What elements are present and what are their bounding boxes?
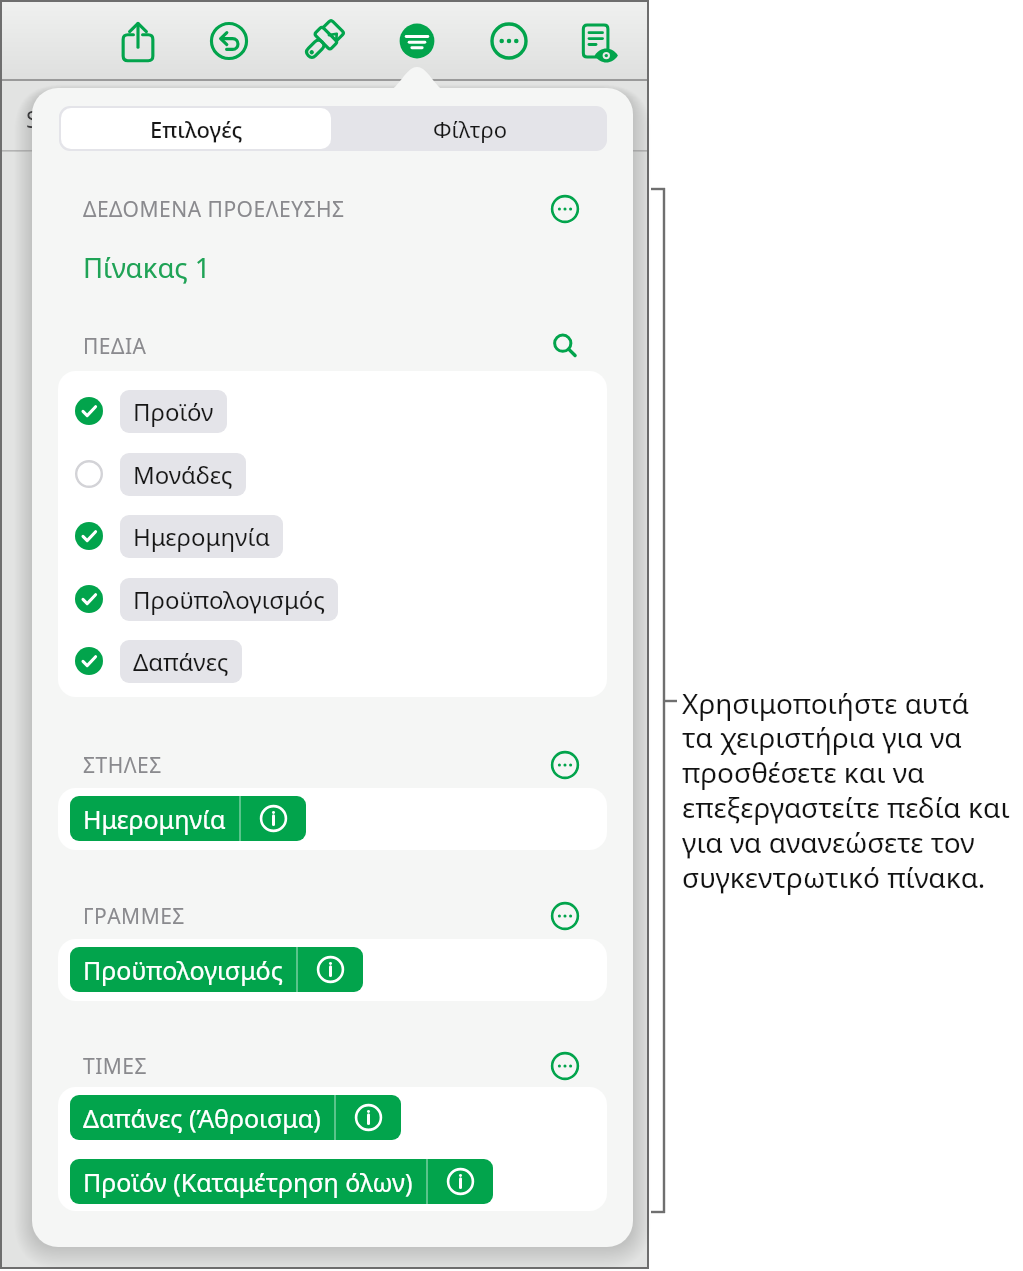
- staticText: Προϊόν: [133, 395, 214, 428]
- button[interactable]: ΓΡΑΜΜΕΣ options: [545, 896, 585, 936]
- button[interactable]: Format: [292, 10, 354, 72]
- button[interactable]: Μονάδες: [58, 443, 607, 505]
- staticText: Προϊόν (Καταμέτρηση όλων): [83, 1165, 413, 1199]
- staticText: ΤΙΜΕΣ: [83, 1052, 148, 1081]
- button[interactable]: Share: [107, 10, 169, 72]
- staticText: Επιλογές: [150, 114, 243, 144]
- staticText: Προϋπολογισμός: [83, 953, 283, 987]
- staticText: Ημερομηνία: [133, 520, 270, 553]
- button[interactable]: ΤΙΜΕΣ options: [545, 1046, 585, 1086]
- staticText: ΣΤΗΛΕΣ: [83, 751, 162, 780]
- staticText: Φίλτρο: [433, 114, 508, 144]
- button[interactable]: Προϋπολογισμός: [70, 947, 363, 992]
- button[interactable]: ΠΕΔΙΑ options: [545, 326, 585, 366]
- button[interactable]: Undo: [198, 10, 260, 72]
- button[interactable]: ΔΕΔΟΜΕΝΑ ΠΡΟΕΛΕΥΣΗΣ options: [545, 189, 585, 229]
- button[interactable]: Info about Προϋπολογισμός: [298, 947, 363, 992]
- button[interactable]: Info about Προϊόν (Καταμέτρηση όλων): [428, 1159, 493, 1204]
- button[interactable]: ΣΤΗΛΕΣ options: [545, 745, 585, 785]
- staticText: Δαπάνες: [133, 645, 229, 678]
- staticText: Ημερομηνία: [83, 802, 226, 836]
- staticText: ΠΕΔΙΑ: [83, 332, 147, 361]
- button[interactable]: Organize: [386, 10, 448, 72]
- staticText: ΓΡΑΜΜΕΣ: [83, 902, 185, 931]
- button[interactable]: Ημερομηνία: [70, 796, 306, 841]
- staticText: Χρησιμοποιήστε αυτά τα χειριστήρια για ν…: [682, 684, 1010, 896]
- staticText: Μονάδες: [133, 458, 233, 491]
- button[interactable]: Δαπάνες (Άθροισμα): [70, 1095, 401, 1140]
- button[interactable]: Info about Δαπάνες (Άθροισμα): [336, 1095, 401, 1140]
- staticText: Πίνακας 1: [83, 249, 211, 286]
- button[interactable]: Δαπάνες: [58, 630, 607, 692]
- button[interactable]: More: [478, 10, 540, 72]
- button[interactable]: Επιλογές: [61, 108, 331, 149]
- button[interactable]: Info about Ημερομηνία: [241, 796, 306, 841]
- button[interactable]: Document: [568, 10, 630, 72]
- staticText: Προϋπολογισμός: [133, 583, 325, 616]
- staticText: Δαπάνες (Άθροισμα): [83, 1101, 321, 1135]
- staticText: S: [26, 103, 39, 134]
- button[interactable]: Προϊόν (Καταμέτρηση όλων): [70, 1159, 493, 1204]
- button[interactable]: Φίλτρο: [333, 106, 607, 151]
- staticText: ΔΕΔΟΜΕΝΑ ΠΡΟΕΛΕΥΣΗΣ: [83, 195, 345, 224]
- button[interactable]: Προϋπολογισμός: [58, 568, 607, 630]
- button[interactable]: Ημερομηνία: [58, 505, 607, 567]
- button[interactable]: Προϊόν: [58, 380, 607, 442]
